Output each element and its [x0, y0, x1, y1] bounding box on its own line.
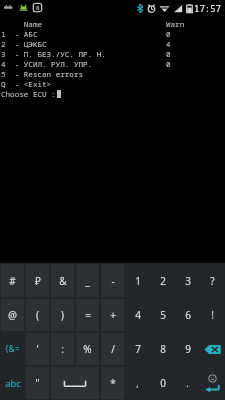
- staticText: ,: [136, 377, 139, 389]
- staticText: {&=: [5, 343, 20, 355]
- staticText: #: [9, 274, 16, 288]
- button[interactable]: 6: [176, 299, 199, 331]
- staticText: 4: [135, 308, 141, 322]
- button[interactable]: !: [201, 299, 224, 331]
- staticText: &: [59, 274, 67, 288]
- staticText: !: [211, 308, 214, 322]
- staticText: 7: [135, 342, 141, 356]
- button[interactable]: abc: [1, 367, 24, 399]
- staticText: Q - <Exit>: [1, 79, 52, 89]
- button[interactable]: &: [51, 264, 74, 297]
- staticText: 0: [160, 376, 166, 390]
- staticText: abc: [5, 377, 21, 390]
- button[interactable]: ₽: [26, 264, 49, 297]
- staticText: ': [36, 342, 39, 356]
- button[interactable]: (: [26, 299, 49, 331]
- staticText: Warn: [166, 19, 185, 29]
- staticText: 0: [166, 29, 171, 39]
- button[interactable]: {&=: [1, 333, 24, 365]
- staticText: 5: [160, 308, 166, 322]
- button[interactable]: 4: [126, 299, 149, 331]
- staticText: 17:57: [194, 2, 222, 14]
- button[interactable]: *: [101, 367, 124, 399]
- button[interactable]: 8: [151, 333, 174, 365]
- staticText: 0: [166, 49, 171, 59]
- staticText: _: [85, 274, 90, 288]
- staticText: *: [110, 376, 116, 390]
- button[interactable]: Delete: [201, 333, 224, 365]
- button[interactable]: 2: [151, 264, 174, 297]
- staticText: 9: [185, 342, 191, 356]
- button[interactable]: _: [76, 264, 99, 297]
- staticText: %: [83, 342, 92, 356]
- button[interactable]: :: [51, 333, 74, 365]
- staticText: 8: [36, 4, 40, 12]
- staticText: 3: [185, 274, 191, 288]
- button[interactable]: @: [1, 299, 24, 331]
- button[interactable]: +: [101, 299, 124, 331]
- staticText: .: [186, 377, 189, 389]
- staticText: ": [35, 376, 40, 390]
- button[interactable]: ': [26, 333, 49, 365]
- button[interactable]: #: [1, 264, 24, 297]
- staticText: ): [61, 308, 64, 322]
- button[interactable]: ): [51, 299, 74, 331]
- staticText: 6: [185, 308, 191, 322]
- staticText: 3 - П. БЕЗ./УС. ПР. Н.: [1, 49, 106, 59]
- button[interactable]: 7: [126, 333, 149, 365]
- staticText: ?: [210, 274, 215, 288]
- staticText: 4: [166, 39, 171, 49]
- staticText: +: [110, 308, 116, 322]
- button[interactable]: ": [26, 367, 49, 399]
- button[interactable]: 3: [176, 264, 199, 297]
- staticText: -: [111, 274, 115, 288]
- staticText: 2: [160, 274, 166, 288]
- button[interactable]: ?: [201, 264, 224, 297]
- button[interactable]: -: [101, 264, 124, 297]
- staticText: 5 - Rescan errors: [1, 69, 84, 79]
- button[interactable]: /: [101, 333, 124, 365]
- staticText: Name: [1, 19, 43, 29]
- button[interactable]: 9: [176, 333, 199, 365]
- button[interactable]: .: [176, 367, 199, 399]
- button[interactable]: ,: [126, 367, 149, 399]
- staticText: 1 - АБС: [1, 29, 38, 39]
- staticText: 2 - ЦЭКБС: [1, 39, 47, 49]
- staticText: =: [85, 308, 91, 322]
- staticText: 4 - УСИЛ. РУЛ. УПР.: [1, 59, 93, 69]
- button[interactable]: Enter: [201, 367, 224, 399]
- staticText: 0: [166, 59, 171, 69]
- button[interactable]: Space: [51, 367, 99, 399]
- staticText: /: [111, 342, 115, 356]
- button[interactable]: 1: [126, 264, 149, 297]
- button[interactable]: 5: [151, 299, 174, 331]
- staticText: @: [8, 308, 17, 322]
- staticText: 8: [160, 342, 166, 356]
- staticText: 1: [135, 274, 141, 288]
- staticText: (: [36, 308, 39, 322]
- button[interactable]: %: [76, 333, 99, 365]
- button[interactable]: =: [76, 299, 99, 331]
- staticText: ₽: [35, 274, 41, 288]
- staticText: Choose ECU :: [1, 89, 56, 99]
- staticText: :: [61, 342, 64, 356]
- button[interactable]: 0: [151, 367, 174, 399]
